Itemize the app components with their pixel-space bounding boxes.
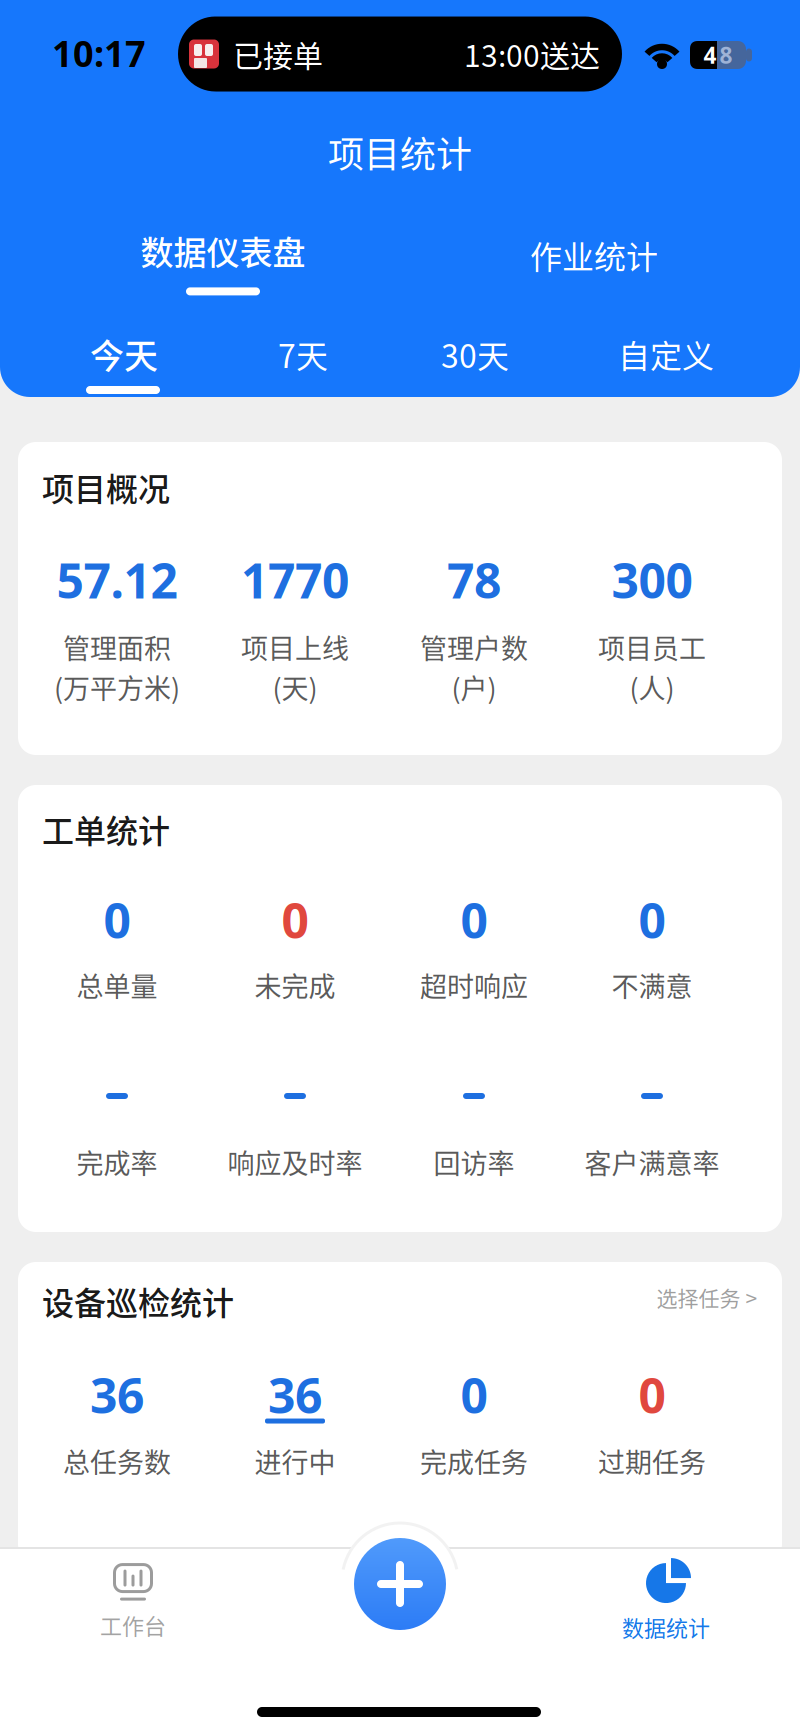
staticText: 总单量 — [76, 965, 157, 1005]
staticText: 10:17 — [52, 29, 146, 77]
staticText: 0 — [638, 888, 665, 952]
staticText: (人) — [629, 667, 674, 707]
staticText: 数据仪表盘 — [140, 227, 305, 274]
staticText: 4 — [703, 40, 716, 70]
button[interactable]: 新建 — [354, 1538, 446, 1630]
staticText: 今天 — [90, 329, 158, 379]
staticText: 项目上线 — [241, 627, 349, 667]
staticText: 工作台 — [100, 1609, 166, 1641]
staticText: 进行中 — [254, 1441, 335, 1481]
button[interactable]: 工作台 — [100, 1563, 166, 1641]
staticText: 7天 — [278, 331, 328, 377]
staticText: 300 — [611, 548, 692, 612]
staticText: 客户满意率 — [584, 1142, 719, 1182]
button[interactable]: 数据统计 — [622, 1561, 710, 1643]
button[interactable]: 7天 — [278, 331, 328, 377]
staticText: 作业统计 — [530, 232, 658, 278]
staticText: 完成任务 — [420, 1441, 528, 1481]
button[interactable]: 选择任务 > — [656, 1282, 757, 1312]
staticText: 项目概况 — [42, 464, 170, 510]
staticText: 管理面积 — [63, 627, 171, 667]
staticText: 0 — [638, 1363, 665, 1427]
staticText: 78 — [447, 548, 501, 612]
staticText: 不满意 — [611, 965, 692, 1005]
staticText: 过期任务 — [598, 1441, 706, 1481]
staticText: 36 — [90, 1363, 144, 1427]
staticText: 未完成 — [254, 965, 335, 1005]
staticText: 0 — [460, 888, 487, 952]
staticText: 57.12 — [56, 548, 177, 612]
staticText: 项目员工 — [598, 627, 706, 667]
staticText: 13:00送达 — [464, 32, 600, 76]
staticText: 总任务数 — [63, 1441, 171, 1481]
staticText: 1770 — [241, 548, 349, 612]
staticText: 36 — [268, 1363, 322, 1427]
staticText: 0 — [281, 888, 308, 952]
staticText: 0 — [103, 888, 130, 952]
staticText: (天) — [272, 667, 317, 707]
button[interactable]: 自定义 — [618, 331, 714, 377]
staticText: 0 — [460, 1363, 487, 1427]
staticText: 8 — [719, 40, 732, 70]
staticText: (户) — [451, 667, 496, 707]
button[interactable]: 已接单 — [178, 16, 622, 91]
staticText: 完成率 — [76, 1142, 157, 1182]
staticText: 选择任务 > — [656, 1282, 757, 1312]
staticText: 自定义 — [618, 331, 714, 377]
staticText: 响应及时率 — [227, 1142, 362, 1182]
staticText: (万平方米) — [54, 667, 180, 707]
staticText: 管理户数 — [420, 627, 528, 667]
staticText: 设备巡检统计 — [42, 1278, 234, 1324]
staticText: 回访率 — [433, 1142, 514, 1182]
staticText: 项目统计 — [328, 126, 472, 178]
button[interactable]: 今天 — [90, 329, 158, 379]
button[interactable]: 作业统计 — [530, 232, 658, 278]
staticText: 30天 — [441, 331, 509, 377]
staticText: 工单统计 — [42, 806, 170, 852]
staticText: 已接单 — [233, 32, 323, 76]
button[interactable]: 数据仪表盘 — [140, 227, 305, 295]
button[interactable]: 30天 — [441, 331, 509, 377]
staticText: 超时响应 — [420, 965, 528, 1005]
staticText: 数据统计 — [622, 1611, 710, 1643]
